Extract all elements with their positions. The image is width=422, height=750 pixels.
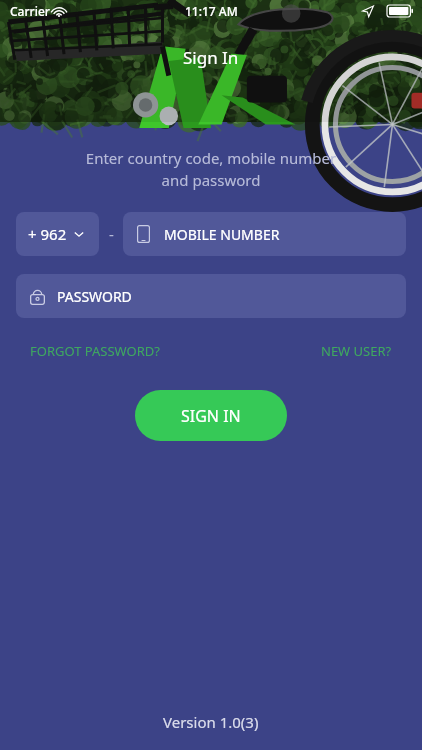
staticText: Enter country code, mobile number and pa… [40, 148, 382, 190]
button[interactable]: + 962 [16, 212, 99, 256]
staticText: Sign In [183, 46, 239, 69]
staticText: Version 1.0(3) [163, 712, 259, 732]
button[interactable]: NEW USER? [321, 338, 392, 364]
button[interactable]: FORGOT PASSWORD? [30, 338, 160, 364]
staticText: 11:17 AM [185, 3, 238, 19]
staticText: PASSWORD [57, 287, 132, 306]
staticText: MOBILE NUMBER [164, 225, 280, 244]
staticText: NEW USER? [321, 342, 392, 360]
button[interactable]: SIGN IN [135, 390, 287, 441]
button[interactable]: MOBILE NUMBER [123, 212, 406, 256]
staticText: FORGOT PASSWORD? [30, 342, 160, 360]
staticText: SIGN IN [181, 405, 241, 427]
staticText: + 962 [28, 224, 67, 244]
staticText: Carrier [10, 3, 50, 19]
button[interactable]: PASSWORD [16, 274, 406, 318]
staticText: - [109, 224, 114, 244]
